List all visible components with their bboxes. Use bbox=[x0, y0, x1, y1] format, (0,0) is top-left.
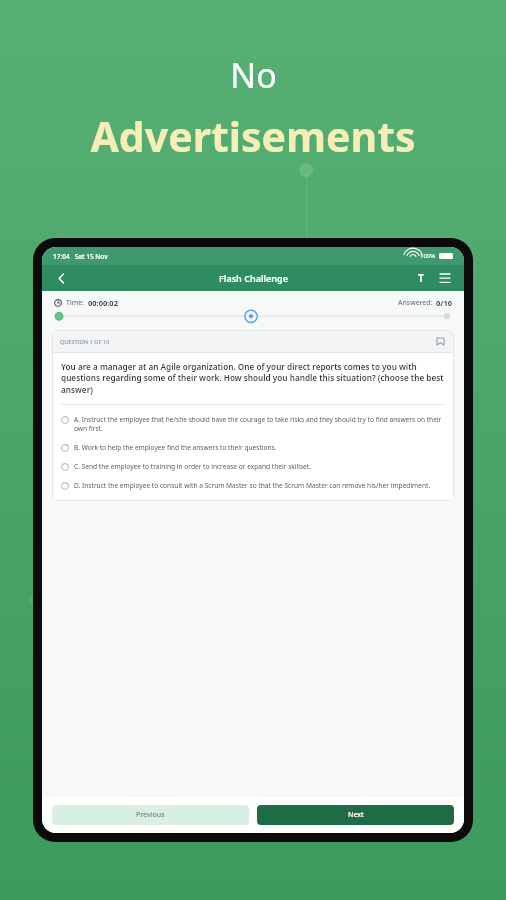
staticText: 0/10 bbox=[436, 298, 452, 308]
button[interactable]: C. Send the employee to training in orde… bbox=[52, 457, 454, 476]
staticText: T bbox=[418, 271, 424, 285]
button[interactable]: D. Instruct the employee to consult with… bbox=[52, 476, 454, 495]
button[interactable]: Back bbox=[52, 269, 70, 287]
staticText: 17:04 Sat 15 Nov bbox=[53, 252, 108, 261]
staticText: Advertisements bbox=[90, 108, 416, 164]
staticText: Flash Challenge bbox=[219, 272, 288, 284]
staticText: C. Send the employee to training in orde… bbox=[74, 462, 311, 471]
staticText: QUESTION 1 OF 10 bbox=[60, 338, 110, 345]
staticText: No bbox=[230, 52, 277, 98]
staticText: Next bbox=[348, 810, 364, 820]
button[interactable]: Text size bbox=[412, 269, 430, 287]
button[interactable]: A. Instruct the employee that he/she sho… bbox=[52, 410, 454, 438]
staticText: Answered: bbox=[398, 298, 433, 308]
button[interactable]: Menu bbox=[436, 269, 454, 287]
staticText: 00:00:02 bbox=[88, 298, 118, 308]
staticText: You are a manager at an Agile organizati… bbox=[61, 361, 445, 396]
staticText: 100% bbox=[420, 252, 436, 260]
button[interactable]: Next bbox=[257, 805, 454, 825]
staticText: B. Work to help the employee find the an… bbox=[74, 443, 277, 452]
staticText: Time: bbox=[66, 298, 85, 308]
button[interactable]: B. Work to help the employee find the an… bbox=[52, 438, 454, 457]
staticText: Previous bbox=[136, 810, 165, 820]
button[interactable]: Bookmark bbox=[434, 335, 446, 347]
button[interactable]: Previous bbox=[52, 805, 249, 825]
staticText: A. Instruct the employee that he/she sho… bbox=[74, 415, 445, 433]
staticText: D. Instruct the employee to consult with… bbox=[74, 481, 431, 490]
